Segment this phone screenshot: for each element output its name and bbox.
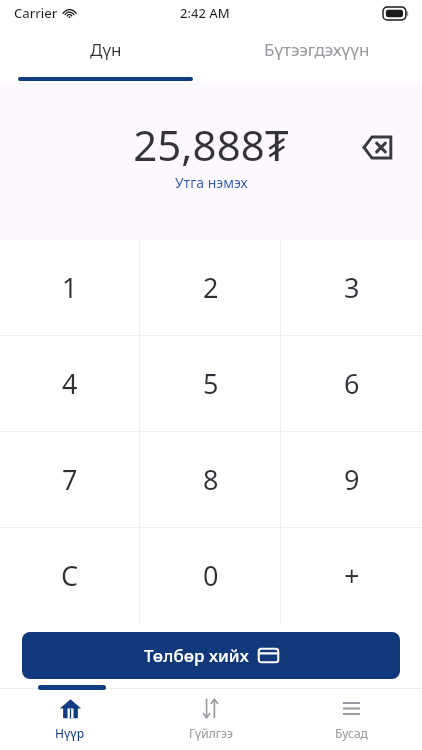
staticText: Бүтээгдэхүүн bbox=[264, 38, 370, 61]
staticText: Нүүр bbox=[55, 725, 85, 741]
staticText: 8 bbox=[203, 461, 219, 498]
staticText: Төлбөр хийх bbox=[144, 644, 249, 667]
button[interactable]: 7 bbox=[0, 431, 140, 527]
button[interactable]: 0 bbox=[140, 527, 281, 623]
button[interactable]: 9 bbox=[281, 431, 422, 527]
staticText: 2 bbox=[203, 269, 219, 306]
button[interactable]: Төлбөр хийх bbox=[22, 632, 400, 679]
button[interactable]: 4 bbox=[0, 335, 140, 431]
staticText: + bbox=[344, 557, 360, 594]
staticText: C bbox=[61, 557, 79, 594]
staticText: Гүйлгээ bbox=[189, 725, 233, 741]
staticText: Утга нэмэх bbox=[175, 173, 248, 192]
button[interactable]: 2 bbox=[140, 240, 281, 335]
staticText: Carrier bbox=[14, 4, 58, 22]
button[interactable]: 3 bbox=[281, 240, 422, 335]
button[interactable]: 5 bbox=[140, 335, 281, 431]
staticText: Дүн bbox=[90, 38, 122, 61]
staticText: 25,888₮ bbox=[133, 116, 289, 173]
staticText: 2:42 AM bbox=[180, 4, 230, 22]
staticText: 1 bbox=[62, 269, 78, 306]
staticText: 7 bbox=[62, 461, 78, 498]
staticText: 5 bbox=[203, 365, 219, 402]
staticText: 0 bbox=[203, 557, 219, 594]
button[interactable]: Нүүр bbox=[0, 688, 140, 750]
button[interactable]: + bbox=[281, 527, 422, 623]
button[interactable]: Бусад bbox=[281, 688, 422, 750]
button[interactable]: Дүн bbox=[0, 26, 211, 83]
button[interactable]: 6 bbox=[281, 335, 422, 431]
button[interactable]: Утга нэмэх bbox=[169, 171, 254, 194]
button[interactable]: 1 bbox=[0, 240, 140, 335]
button[interactable]: Гүйлгээ bbox=[140, 688, 281, 750]
staticText: Бусад bbox=[335, 725, 368, 741]
staticText: 3 bbox=[344, 269, 360, 306]
button[interactable]: Бүтээгдэхүүн bbox=[211, 26, 422, 83]
staticText: 6 bbox=[344, 365, 360, 402]
button[interactable]: C bbox=[0, 527, 140, 623]
staticText: 9 bbox=[344, 461, 360, 498]
button[interactable]: 8 bbox=[140, 431, 281, 527]
staticText: 4 bbox=[62, 365, 78, 402]
button[interactable]: Backspace bbox=[356, 125, 400, 169]
